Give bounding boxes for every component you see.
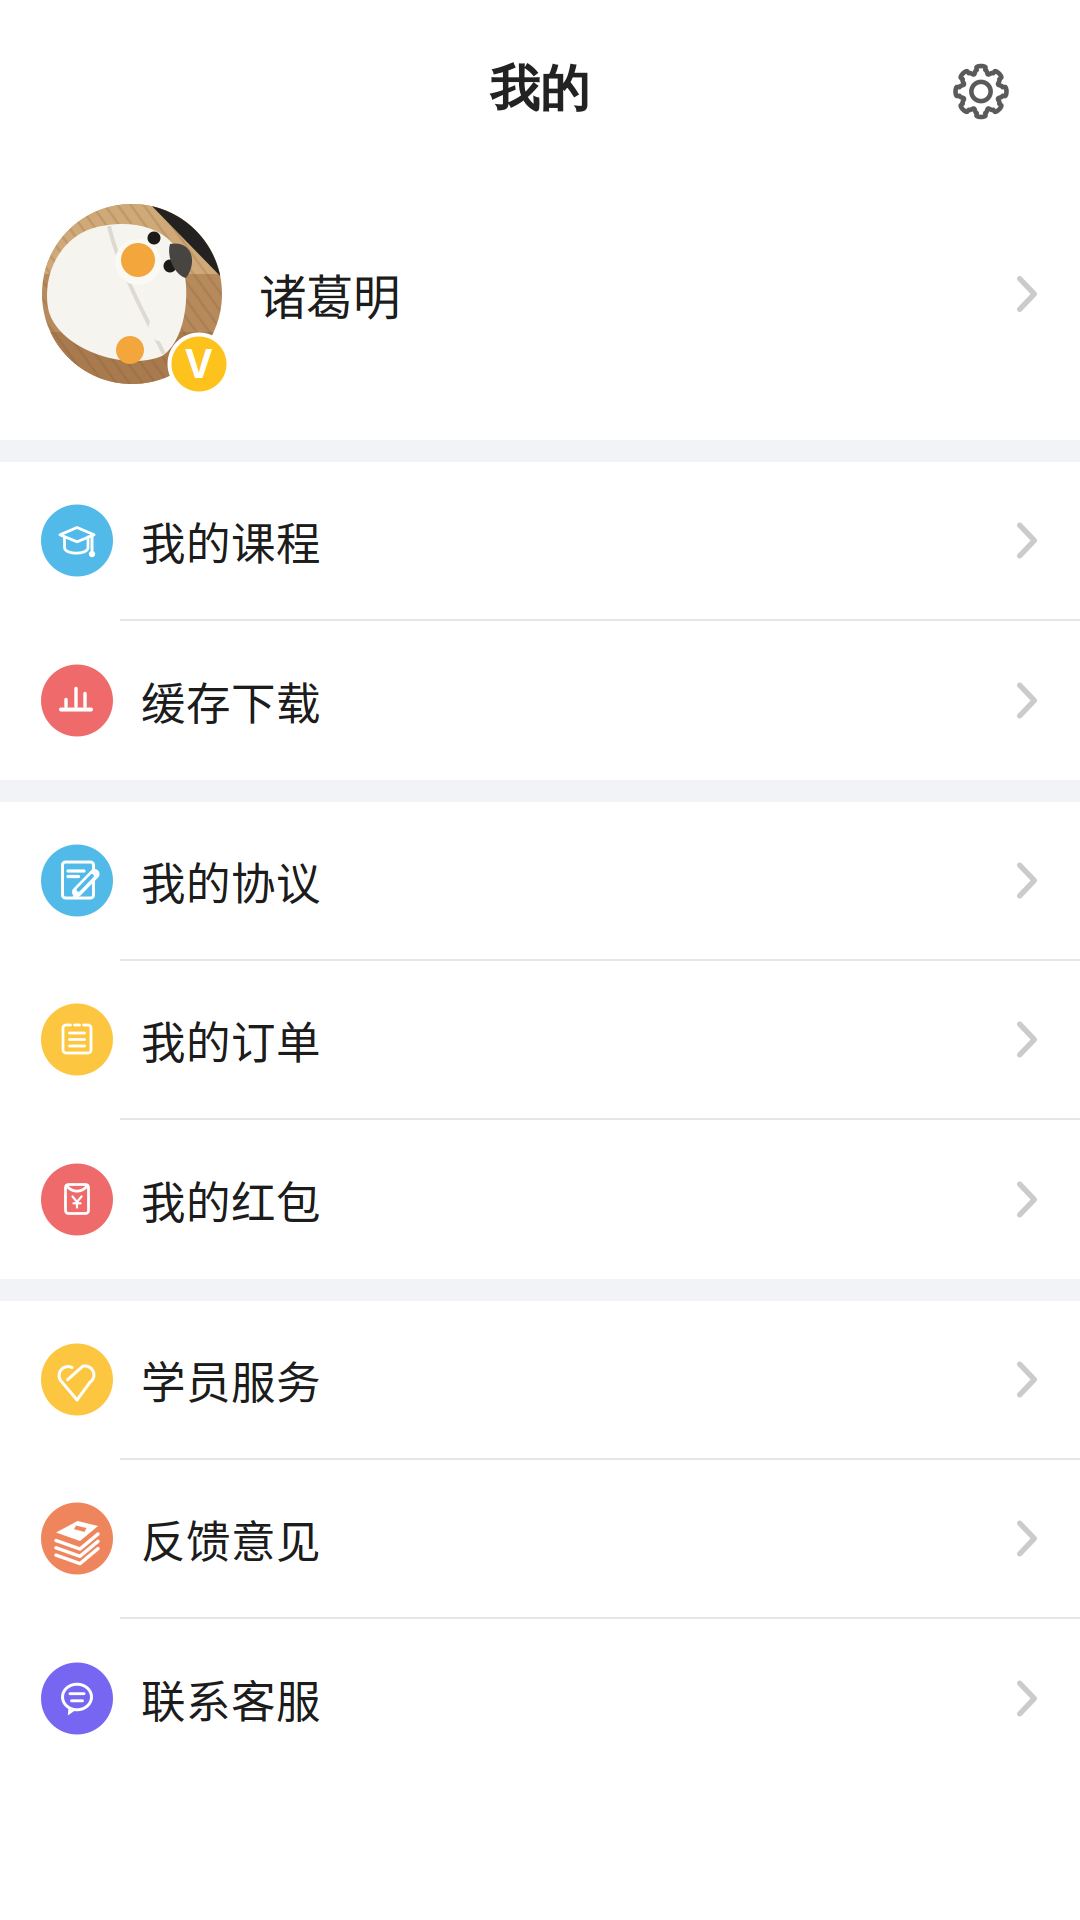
button[interactable]: 联系客服 [0,1619,1080,1778]
staticText: 联系客服 [141,1666,321,1731]
button[interactable]: V [0,178,1080,440]
staticText: 我的红包 [141,1167,321,1232]
staticText: 我的订单 [141,1007,321,1072]
button[interactable]: 学员服务 [0,1301,1080,1460]
button[interactable]: 缓存下载 [0,621,1080,780]
button[interactable]: 我的红包 [0,1120,1080,1279]
staticText: 缓存下载 [141,668,321,733]
staticText: 反馈意见 [141,1506,321,1571]
staticText: 学员服务 [141,1347,321,1412]
staticText: 我的课程 [141,508,321,573]
staticText: V [185,341,213,387]
button[interactable]: Settings [938,43,1024,134]
staticText: 诸葛明 [259,260,400,328]
staticText: 我的协议 [141,848,321,913]
button[interactable]: 我的课程 [0,462,1080,621]
button[interactable]: 我的订单 [0,961,1080,1120]
staticText: 我的 [490,58,590,120]
button[interactable]: 我的协议 [0,802,1080,961]
button[interactable]: 反馈意见 [0,1460,1080,1619]
